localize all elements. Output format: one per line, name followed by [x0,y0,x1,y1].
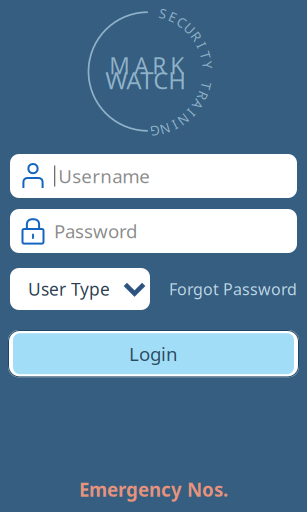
staticText: A [193,96,202,113]
staticText: Login [129,341,178,366]
button[interactable]: Forgot Password [169,278,297,300]
staticText: Emergency Nos. [79,477,228,502]
staticText: M A R K [109,50,184,80]
staticText: I [172,116,177,134]
staticText: WATCH [105,64,186,96]
staticText: R [192,27,200,45]
staticText: C [178,13,186,31]
staticText: I [189,104,194,122]
staticText: User Type [28,277,110,300]
staticText: Forgot Password [169,278,297,300]
staticText: E [169,8,176,26]
staticText: T [203,77,210,94]
button[interactable]: User Type [10,268,150,310]
staticText: Password [54,219,137,243]
staticText: G [150,122,160,140]
staticText: N [179,111,189,128]
staticText: R [199,87,207,104]
staticText: S [159,4,166,22]
button[interactable]: Emergency Nos. [79,477,228,502]
staticText: Username [58,164,150,188]
staticText: T [202,46,209,64]
staticText: U [185,20,195,37]
staticText: Y [203,56,211,74]
button[interactable]: Login [8,330,299,377]
staticText: I [199,36,204,54]
staticText: N [160,120,170,138]
